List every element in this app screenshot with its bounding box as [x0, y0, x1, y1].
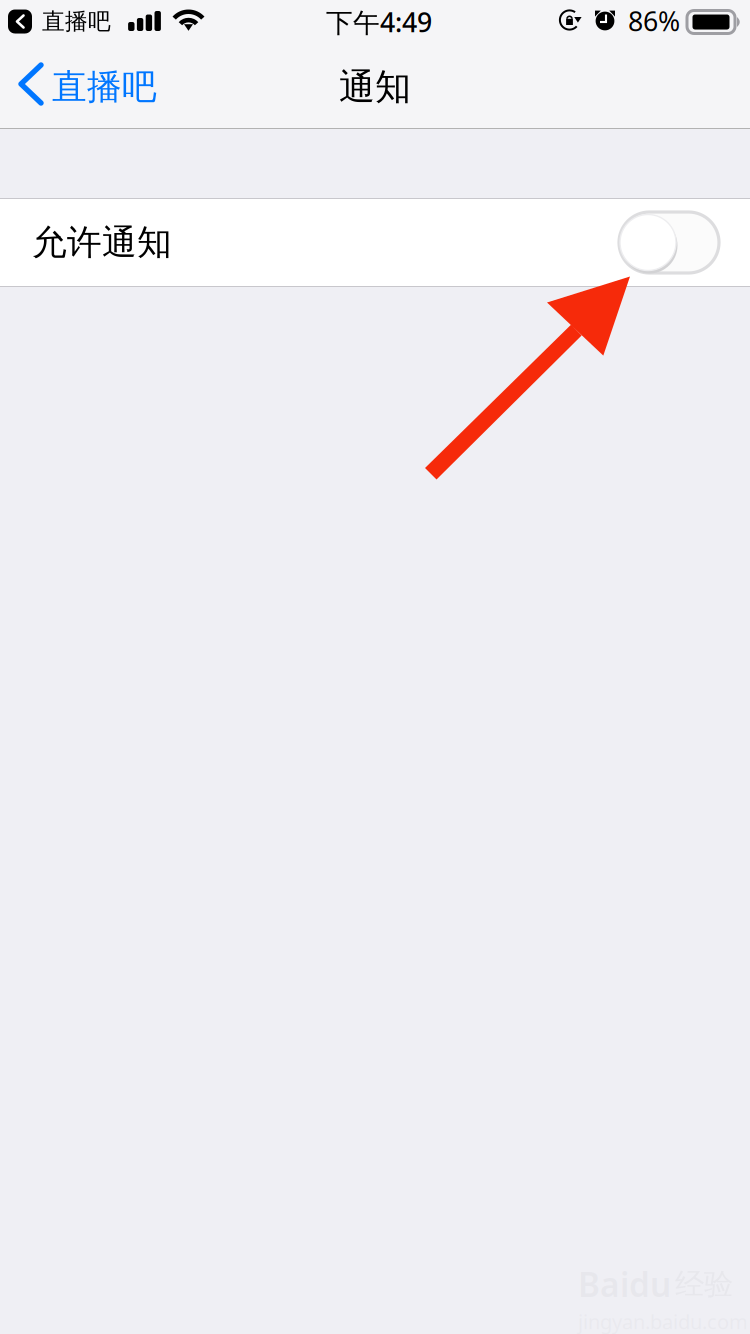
staticText: Baidu [578, 1262, 671, 1306]
staticText: 下午4:49 [326, 4, 432, 40]
button[interactable]: 直播吧 [0, 45, 171, 129]
button[interactable]: 允许通知 [0, 198, 750, 287]
staticText: 直播吧 [42, 8, 111, 35]
staticText: 86% [628, 3, 680, 39]
staticText: 通知 [339, 65, 411, 109]
staticText: 直播吧 [52, 66, 157, 108]
staticText: 允许通知 [32, 221, 172, 264]
